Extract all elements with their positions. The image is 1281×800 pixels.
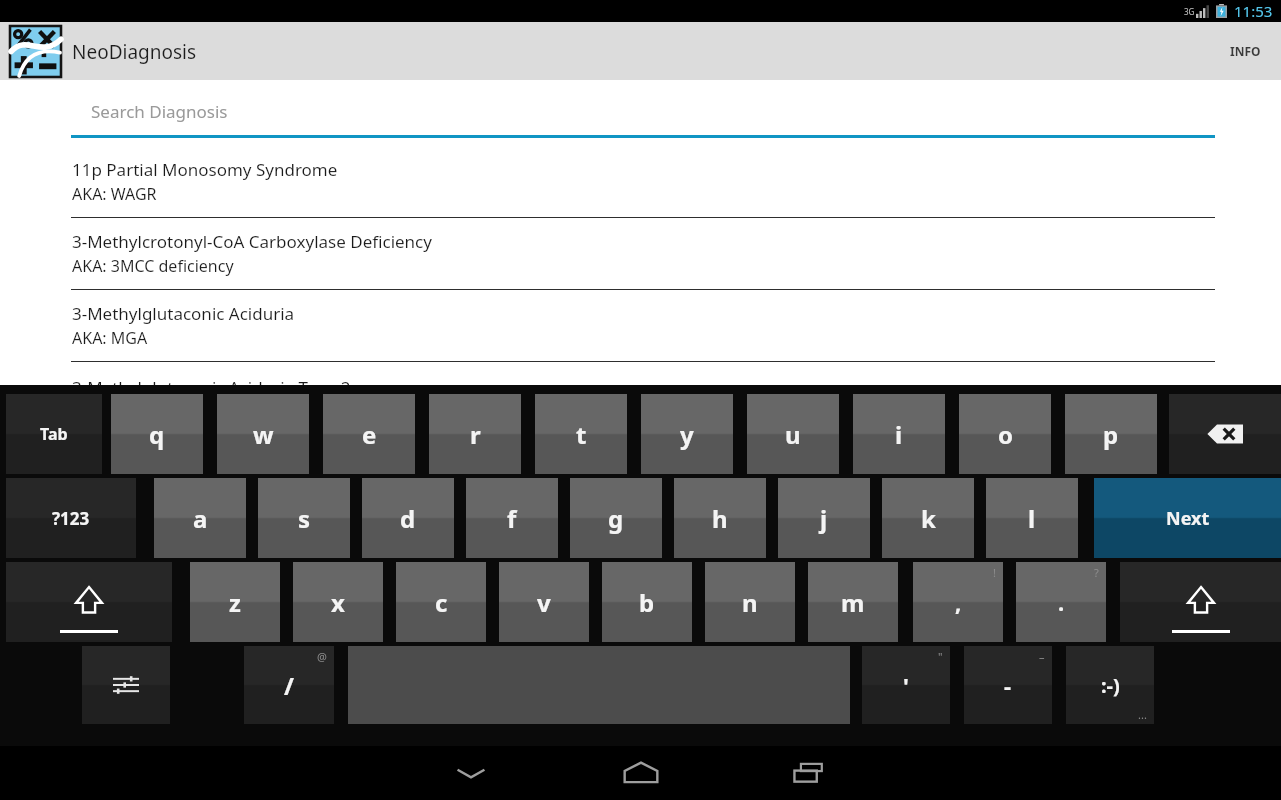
- staticText: v: [537, 586, 551, 619]
- staticText: -: [1004, 670, 1012, 700]
- button[interactable]: ": [862, 646, 950, 724]
- staticText: u: [785, 418, 801, 451]
- button[interactable]: ?123: [6, 478, 136, 558]
- staticText: o: [998, 418, 1013, 451]
- button[interactable]: b: [602, 562, 692, 642]
- button[interactable]: Backspace: [1169, 394, 1281, 474]
- staticText: INFO: [1230, 43, 1261, 59]
- button[interactable]: n: [705, 562, 795, 642]
- staticText: ...: [1138, 707, 1147, 722]
- staticText: .: [1058, 587, 1065, 617]
- button[interactable]: :-): [1066, 646, 1154, 724]
- button[interactable]: k: [882, 478, 974, 558]
- staticText: y: [680, 418, 694, 451]
- staticText: ,: [955, 587, 962, 617]
- button[interactable]: m: [808, 562, 898, 642]
- staticText: q: [149, 418, 165, 451]
- button[interactable]: g: [570, 478, 662, 558]
- staticText: 3G: [1184, 6, 1195, 17]
- staticText: j: [820, 502, 828, 535]
- staticText: m: [841, 586, 865, 619]
- button[interactable]: Next: [1094, 478, 1281, 558]
- button[interactable]: 3-Methylglutaconic Aciduria Type 2: [0, 362, 1281, 385]
- staticText: t: [576, 418, 587, 451]
- button[interactable]: e: [323, 394, 415, 474]
- staticText: k: [921, 502, 936, 535]
- staticText: h: [712, 502, 728, 535]
- button[interactable]: h: [674, 478, 766, 558]
- staticText: i: [895, 418, 903, 451]
- staticText: ?123: [52, 507, 90, 530]
- button[interactable]: u: [747, 394, 839, 474]
- staticText: l: [1028, 502, 1036, 535]
- staticText: AKA: 3MCC deficiency: [72, 255, 234, 277]
- button[interactable]: –: [964, 646, 1052, 724]
- button[interactable]: ?: [1016, 562, 1106, 642]
- staticText: w: [253, 418, 274, 451]
- button[interactable]: x: [293, 562, 383, 642]
- button[interactable]: NeoDiagnosis: [10, 26, 197, 77]
- button[interactable]: d: [362, 478, 454, 558]
- staticText: x: [331, 586, 345, 619]
- staticText: 3-Methylcrotonyl-CoA Carboxylase Deficie…: [72, 230, 432, 253]
- staticText: ': [903, 670, 909, 700]
- staticText: g: [608, 502, 624, 535]
- button[interactable]: Shift: [1120, 562, 1281, 642]
- button[interactable]: r: [429, 394, 521, 474]
- button[interactable]: Search Diagnosis: [71, 100, 1215, 138]
- button[interactable]: w: [217, 394, 309, 474]
- staticText: 11p Partial Monosomy Syndrome: [72, 158, 338, 181]
- button[interactable]: 3-Methylglutaconic Aciduria: [0, 290, 1281, 362]
- staticText: f: [507, 502, 517, 535]
- staticText: AKA: WAGR: [72, 183, 157, 205]
- staticText: e: [362, 418, 377, 451]
- staticText: NeoDiagnosis: [72, 39, 197, 65]
- staticText: d: [400, 502, 416, 535]
- button[interactable]: @: [244, 646, 334, 724]
- button[interactable]: s: [258, 478, 350, 558]
- staticText: Search Diagnosis: [91, 100, 228, 123]
- staticText: p: [1103, 418, 1119, 451]
- button[interactable]: Hide keyboard: [407, 746, 535, 800]
- staticText: Next: [1166, 506, 1210, 531]
- staticText: ?: [1094, 565, 1099, 580]
- button[interactable]: 3-Methylcrotonyl-CoA Carboxylase Deficie…: [0, 218, 1281, 290]
- button[interactable]: f: [466, 478, 558, 558]
- button[interactable]: j: [778, 478, 870, 558]
- staticText: @: [317, 649, 327, 664]
- button[interactable]: q: [111, 394, 203, 474]
- button[interactable]: l: [986, 478, 1078, 558]
- staticText: AKA: MGA: [72, 327, 148, 349]
- button[interactable]: Shift: [6, 562, 172, 642]
- staticText: 3-Methylglutaconic Aciduria: [72, 302, 295, 325]
- button[interactable]: 11p Partial Monosomy Syndrome: [0, 146, 1281, 218]
- button[interactable]: y: [641, 394, 733, 474]
- button[interactable]: INFO: [1210, 22, 1281, 80]
- button[interactable]: t: [535, 394, 627, 474]
- staticText: s: [298, 502, 311, 535]
- button[interactable]: c: [396, 562, 486, 642]
- button[interactable]: z: [190, 562, 280, 642]
- button[interactable]: v: [499, 562, 589, 642]
- staticText: :-): [1101, 672, 1120, 699]
- staticText: r: [470, 418, 481, 451]
- staticText: 3-Methylglutaconic Aciduria Type 2: [72, 376, 351, 385]
- button[interactable]: p: [1065, 394, 1157, 474]
- button[interactable]: Input settings: [82, 646, 170, 724]
- button[interactable]: o: [959, 394, 1051, 474]
- button[interactable]: Recent apps: [747, 746, 875, 800]
- staticText: 11:53: [1234, 1, 1273, 21]
- button[interactable]: i: [853, 394, 945, 474]
- button[interactable]: Home: [577, 746, 705, 800]
- staticText: n: [742, 586, 758, 619]
- staticText: z: [229, 586, 241, 619]
- staticText: –: [1039, 649, 1045, 664]
- staticText: Tab: [40, 423, 68, 445]
- staticText: /: [284, 669, 294, 702]
- staticText: !: [993, 565, 996, 580]
- button[interactable]: !: [913, 562, 1003, 642]
- staticText: c: [435, 586, 448, 619]
- button[interactable]: Tab: [6, 394, 102, 474]
- button[interactable]: a: [154, 478, 246, 558]
